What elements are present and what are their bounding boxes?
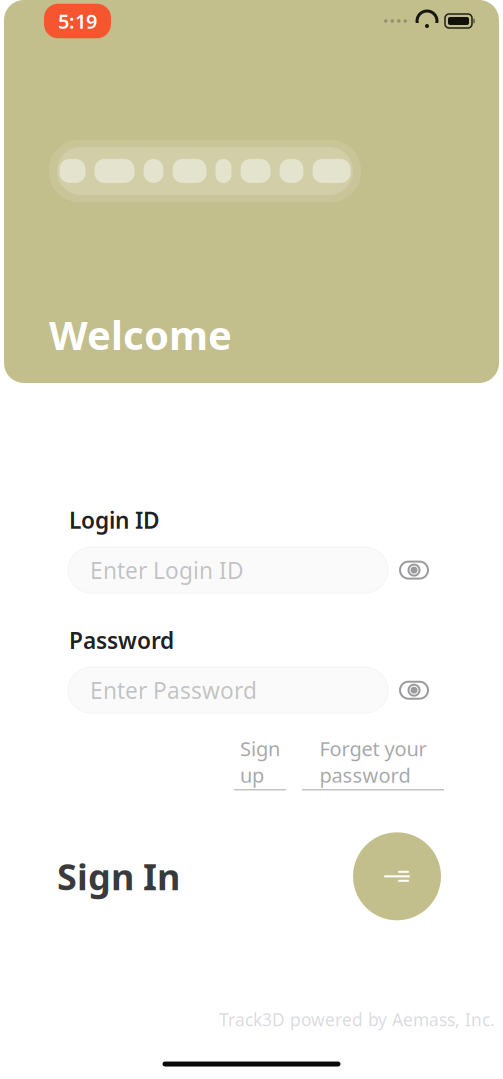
button[interactable]: Enter Login ID bbox=[68, 547, 388, 593]
staticText: Login ID bbox=[69, 505, 160, 535]
staticText: Password bbox=[69, 625, 174, 655]
button[interactable]: Forget your password bbox=[302, 735, 444, 790]
staticText: 5:19 bbox=[58, 8, 97, 34]
button[interactable]: Sign up bbox=[234, 735, 286, 790]
button[interactable]: Enter Password bbox=[68, 667, 388, 713]
button[interactable]: Sign In bbox=[353, 832, 441, 920]
button[interactable]: Show Enter Login ID bbox=[388, 547, 440, 593]
staticText: Enter Password bbox=[90, 675, 257, 705]
button[interactable]: Show Enter Password bbox=[388, 667, 440, 713]
staticText: Sign In bbox=[57, 852, 180, 900]
staticText: Sign up bbox=[240, 735, 280, 788]
staticText: Track3D powered by Aemass, Inc. bbox=[219, 1008, 495, 1031]
staticText: Enter Login ID bbox=[90, 555, 244, 585]
staticText: Forget your password bbox=[319, 735, 426, 788]
staticText: Welcome bbox=[49, 308, 232, 361]
